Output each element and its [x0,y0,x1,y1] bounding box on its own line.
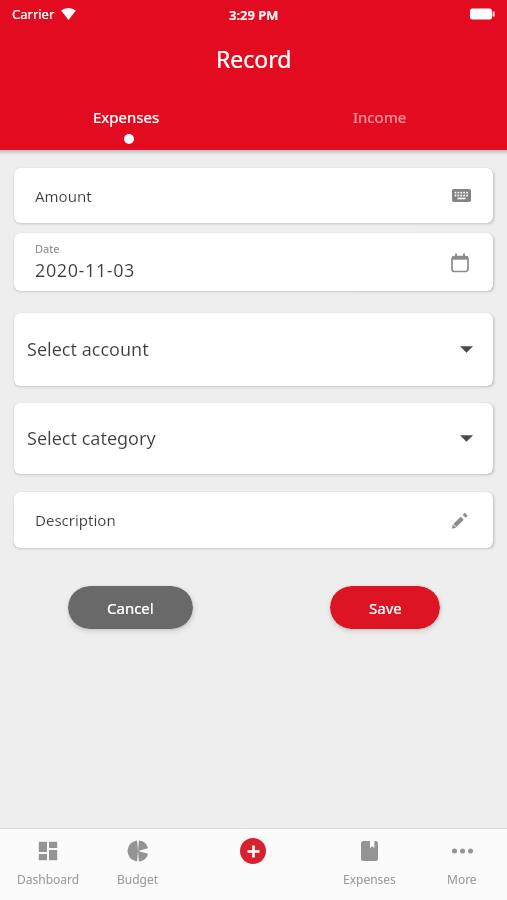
staticText: Cancel [107,598,154,618]
button[interactable]: Expenses [324,828,414,900]
button[interactable]: Select category [14,403,493,474]
staticText: More [447,871,477,887]
staticText: Save [369,598,402,618]
staticText: 3:29 PM [229,6,279,24]
button[interactable] [240,838,266,864]
staticText: Amount [35,186,92,206]
button[interactable]: More [417,828,507,900]
button[interactable]: Description [14,492,493,548]
staticText: Date [35,241,60,256]
staticText: Description [35,510,116,530]
staticText: Budget [117,871,159,887]
button[interactable]: Budget [93,828,183,900]
staticText: Carrier [12,5,55,23]
staticText: Select account [27,337,149,362]
button[interactable]: Expenses [0,103,253,131]
staticText: Expenses [343,871,396,887]
button[interactable]: Select account [14,313,493,386]
button[interactable]: Amount [14,168,493,223]
button[interactable]: Date [14,233,493,291]
staticText: Record [216,43,292,74]
staticText: Expenses [93,107,160,127]
staticText: 2020-11-03 [35,258,135,283]
button[interactable]: Cancel [68,586,193,629]
staticText: Select category [27,426,156,451]
button[interactable]: Save [330,586,440,629]
staticText: Income [353,107,407,127]
button[interactable]: Dashboard [3,828,93,900]
staticText: Dashboard [17,871,80,887]
button[interactable]: Income [253,103,507,131]
